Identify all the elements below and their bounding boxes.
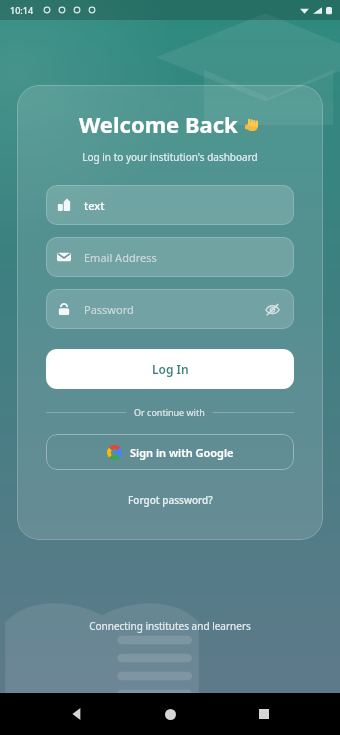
staticText: Welcome Back [79,109,238,139]
button[interactable]: Log In [46,349,294,389]
staticText: Connecting institutes and learners [89,619,251,633]
staticText: Forgot password? [128,493,213,507]
button[interactable]: Forgot password? [122,490,219,510]
button[interactable]: Email Address [46,237,294,277]
staticText: Or continue with [134,406,205,418]
button[interactable]: text [46,185,294,225]
button[interactable]: Back [60,697,94,731]
staticText: Log in to your institution's dashboard [82,150,258,164]
staticText: Sign in with Google [130,445,234,460]
staticText: text [84,198,105,213]
button[interactable]: Password [46,289,294,329]
button[interactable]: Show password [261,298,283,320]
staticText: Password [84,302,134,317]
staticText: Email Address [84,250,157,265]
staticText: 10:14 [10,4,34,16]
button[interactable]: Home [153,697,187,731]
button[interactable]: Recent apps [247,697,281,731]
staticText: Log In [152,361,189,377]
button[interactable]: Sign in with Google [46,434,294,470]
